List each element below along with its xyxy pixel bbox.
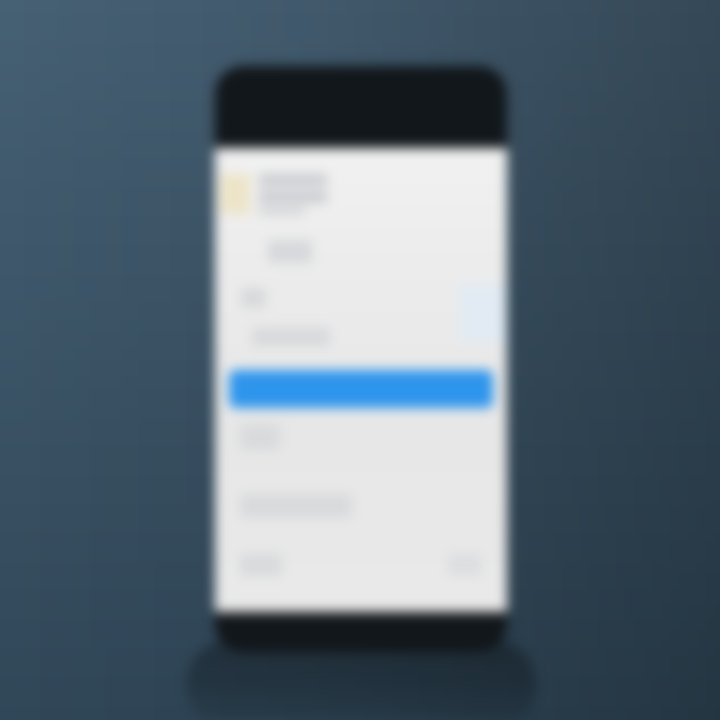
button[interactable]: Continue <box>229 370 493 408</box>
button[interactable]: Details <box>268 240 312 263</box>
button[interactable]: Open item details <box>220 174 410 214</box>
button[interactable]: Status <box>459 284 507 342</box>
